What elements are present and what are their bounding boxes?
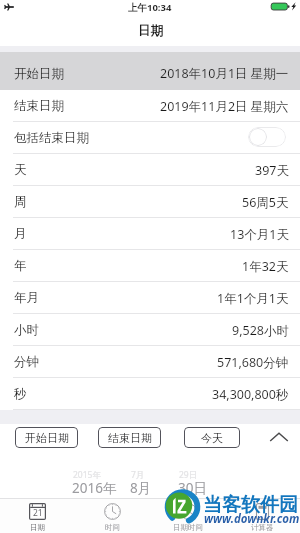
staticText: 30日 <box>178 479 207 497</box>
staticText: 1年32天 <box>242 258 289 275</box>
staticText: 年 <box>14 258 27 274</box>
button[interactable]: 今天 <box>184 427 240 448</box>
staticText: 9,528小时 <box>232 322 289 339</box>
staticText: 周 <box>14 194 27 210</box>
staticText: 年月 <box>14 290 39 306</box>
staticText: 8月 <box>130 479 152 497</box>
button[interactable]: 月 <box>0 218 300 250</box>
staticText: 月 <box>14 226 27 242</box>
staticText: 56周5天 <box>242 194 289 211</box>
staticText: 天 <box>14 162 27 178</box>
button[interactable]: 年月 <box>0 282 300 314</box>
staticText: 分钟 <box>14 354 39 370</box>
staticText: 1年1个月1天 <box>217 290 289 307</box>
button[interactable]: Include end date toggle <box>248 127 286 147</box>
staticText: 日期 <box>138 23 163 39</box>
staticText: 开始日期 <box>25 431 69 445</box>
staticText: 2018年10月1日 星期一 <box>160 65 289 82</box>
button[interactable]: Collapse <box>267 426 291 450</box>
staticText: 开始日期 <box>14 66 64 82</box>
button[interactable]: 2016年 <box>72 479 117 497</box>
staticText: 2019年11月2日 星期六 <box>160 98 289 115</box>
staticText: 结束日期 <box>14 98 64 114</box>
button[interactable]: 结束日期 <box>0 90 300 122</box>
staticText: www.downkr.com <box>204 511 300 527</box>
staticText: 34,300,800秒 <box>212 386 289 403</box>
button[interactable]: 8月 <box>130 479 152 497</box>
staticText: 结束日期 <box>108 431 152 445</box>
staticText: 当客软件园 <box>203 493 298 517</box>
staticText: 2016年 <box>72 479 117 497</box>
staticText: 上午10:34 <box>128 1 172 14</box>
button[interactable]: 时间 <box>75 498 150 533</box>
button[interactable]: 日期 <box>0 498 75 533</box>
button[interactable]: 开始日期 <box>15 427 78 448</box>
button[interactable]: 30日 <box>178 479 207 497</box>
button[interactable]: 年 <box>0 250 300 282</box>
staticText: 日期 <box>30 523 45 532</box>
button[interactable]: 天 <box>0 154 300 186</box>
staticText: 397天 <box>255 162 289 179</box>
staticText: 包括结束日期 <box>14 130 89 146</box>
staticText: 时间 <box>105 523 120 532</box>
button[interactable]: 小时 <box>0 314 300 346</box>
staticText: 571,680分钟 <box>217 354 289 371</box>
staticText: 小时 <box>14 322 39 338</box>
staticText: 计算器 <box>251 523 274 532</box>
button[interactable]: 开始日期 <box>0 52 300 90</box>
staticText: 秒 <box>14 386 27 402</box>
button[interactable]: 周 <box>0 186 300 218</box>
staticText: 2015年 <box>73 469 101 481</box>
staticText: 21 <box>33 507 43 519</box>
button[interactable]: 秒 <box>0 378 300 410</box>
button[interactable]: 日期时间 <box>150 498 225 533</box>
button[interactable]: 结束日期 <box>98 427 161 448</box>
staticText: 今天 <box>201 431 223 445</box>
staticText: 29日 <box>179 469 198 481</box>
button[interactable]: 分钟 <box>0 346 300 378</box>
staticText: 13个月1天 <box>230 226 289 243</box>
staticText: 日期时间 <box>173 523 203 532</box>
button[interactable]: 包括结束日期 <box>0 122 300 154</box>
button[interactable]: 计算器 <box>225 498 300 533</box>
staticText: 7月 <box>131 469 145 481</box>
